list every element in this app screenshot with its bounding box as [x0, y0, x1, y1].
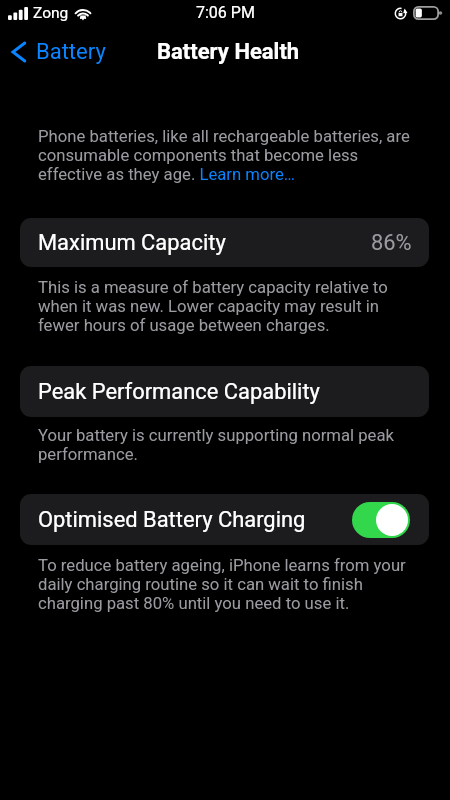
staticText: Maximum Capacity	[38, 230, 226, 256]
staticText: This is a measure of battery capacity re…	[38, 278, 420, 335]
staticText: Your battery is currently supporting nor…	[38, 426, 420, 464]
staticText: 86%	[371, 230, 412, 256]
staticText: Optimised Battery Charging	[38, 507, 306, 533]
other: Rotation lock	[394, 7, 407, 20]
button[interactable]: Optimised Battery Charging toggle	[352, 502, 410, 538]
staticText: Phone batteries, like all rechargeable b…	[38, 127, 420, 184]
staticText: Battery	[36, 39, 106, 65]
button[interactable]: Optimised Battery Charging	[20, 494, 429, 545]
button[interactable]: Maximum Capacity	[20, 218, 429, 267]
button[interactable]: Battery	[0, 30, 116, 74]
staticText: 7:06 PM	[196, 3, 255, 22]
staticText: To reduce battery ageing, iPhone learns …	[38, 556, 420, 613]
button[interactable]: Peak Performance Capability	[20, 366, 429, 417]
staticText: Peak Performance Capability	[38, 379, 320, 405]
staticText: Battery Health	[157, 39, 300, 65]
staticText: Zong	[33, 4, 69, 22]
